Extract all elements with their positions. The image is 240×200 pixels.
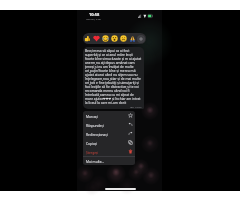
button[interactable]: Ștergeți [83, 147, 135, 156]
staticText: Marcați [86, 114, 98, 118]
staticText: ieri 10:54 [130, 105, 142, 108]
button[interactable]: Pray [129, 35, 136, 42]
staticText: Ștergeți [86, 150, 99, 154]
button[interactable]: Love [93, 35, 100, 42]
button[interactable]: Laugh [102, 35, 109, 42]
staticText: Miercuri, 5 apr [86, 18, 101, 21]
button[interactable]: Sad [120, 35, 127, 42]
button[interactable]: Marcați [83, 111, 135, 120]
button[interactable]: Copiați [83, 138, 135, 147]
staticText: 10:58 [89, 12, 100, 17]
button[interactable]: Redirecționați [83, 129, 135, 138]
staticText: Becți mesa să săpui ca ai fost superbă,ș… [85, 49, 142, 105]
button[interactable]: Răspundeți [83, 120, 135, 129]
staticText: Copiați [86, 141, 97, 145]
staticText: Mai multe... [86, 159, 105, 163]
button[interactable]: Mai multe... [83, 157, 135, 165]
staticText: Redirecționați [86, 132, 108, 136]
button[interactable]: Wow [111, 35, 118, 42]
button[interactable]: Like [84, 35, 91, 42]
staticText: Răspundeți [86, 123, 104, 127]
button[interactable]: More reactions [137, 35, 145, 43]
